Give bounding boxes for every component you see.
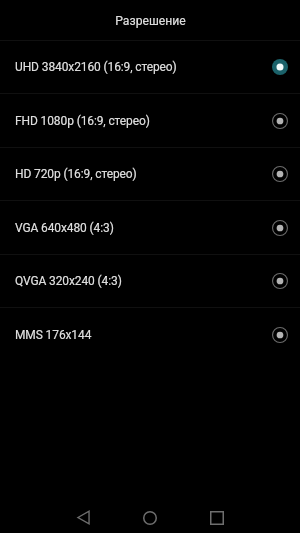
button[interactable]: HD 720p (16:9, стерео) <box>0 148 300 200</box>
button[interactable]: UHD 3840x2160 (16:9, стерео) <box>0 41 300 93</box>
staticText: UHD 3840x2160 (16:9, стерео) <box>15 60 272 74</box>
staticText: Разрешение <box>115 14 186 28</box>
button[interactable]: MMS 176x144 <box>0 308 300 361</box>
staticText: QVGA 320x240 (4:3) <box>15 274 272 288</box>
button[interactable]: QVGA 320x240 (4:3) <box>0 255 300 307</box>
button[interactable]: Back <box>61 502 105 533</box>
staticText: VGA 640x480 (4:3) <box>15 221 272 235</box>
button[interactable]: Home <box>128 502 172 533</box>
button[interactable]: Recent apps <box>195 502 239 533</box>
button[interactable]: VGA 640x480 (4:3) <box>0 201 300 254</box>
staticText: MMS 176x144 <box>15 328 272 342</box>
staticText: HD 720p (16:9, стерео) <box>15 167 272 181</box>
staticText: FHD 1080p (16:9, стерео) <box>15 114 272 128</box>
button[interactable]: FHD 1080p (16:9, стерео) <box>0 94 300 147</box>
